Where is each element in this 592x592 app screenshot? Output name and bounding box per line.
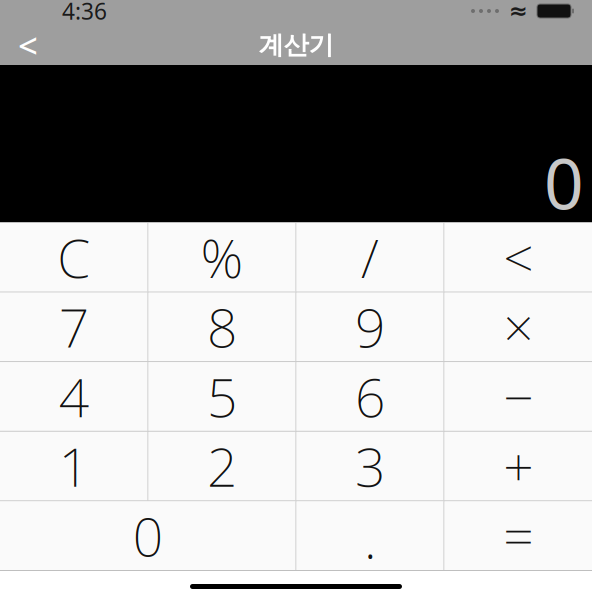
staticText: 6 (355, 361, 385, 432)
staticText: < (503, 222, 533, 293)
staticText: / (361, 222, 379, 293)
button[interactable]: C (0, 223, 147, 292)
button[interactable]: 6 (296, 362, 443, 431)
button[interactable]: 0 (0, 501, 295, 570)
staticText: 2 (207, 431, 237, 501)
button[interactable]: 9 (296, 293, 443, 361)
button[interactable]: 8 (148, 293, 295, 361)
staticText: C (57, 222, 90, 293)
staticText: + (503, 431, 533, 501)
staticText: 5 (207, 361, 237, 432)
staticText: . (363, 497, 376, 575)
button[interactable]: Back (0, 25, 56, 65)
staticText: < (18, 22, 38, 68)
button[interactable]: / (296, 223, 443, 292)
button[interactable]: . (296, 501, 443, 570)
button[interactable]: 7 (0, 293, 147, 361)
button[interactable]: < (444, 223, 592, 292)
button[interactable]: % (148, 223, 295, 292)
staticText: 4 (59, 361, 89, 432)
staticText: 계산기 (258, 29, 333, 60)
staticText: = (503, 500, 533, 571)
button[interactable]: − (444, 362, 592, 431)
button[interactable]: 5 (148, 362, 295, 431)
button[interactable]: + (444, 432, 592, 500)
staticText: 4:36 (62, 0, 107, 26)
staticText: % (200, 222, 243, 293)
staticText: 7 (59, 291, 89, 362)
staticText: 9 (355, 291, 385, 362)
staticText: 1 (59, 431, 89, 501)
button[interactable]: 3 (296, 432, 443, 500)
staticText: 8 (207, 291, 237, 362)
staticText: 0 (544, 136, 584, 229)
button[interactable]: × (444, 293, 592, 361)
button[interactable]: 2 (148, 432, 295, 500)
staticText: ≈ (509, 0, 528, 24)
staticText: − (503, 361, 533, 432)
button[interactable]: 1 (0, 432, 147, 500)
button[interactable]: = (444, 501, 592, 570)
staticText: 3 (355, 431, 385, 501)
staticText: 0 (133, 500, 163, 571)
button[interactable]: 4 (0, 362, 147, 431)
staticText: × (503, 291, 533, 362)
